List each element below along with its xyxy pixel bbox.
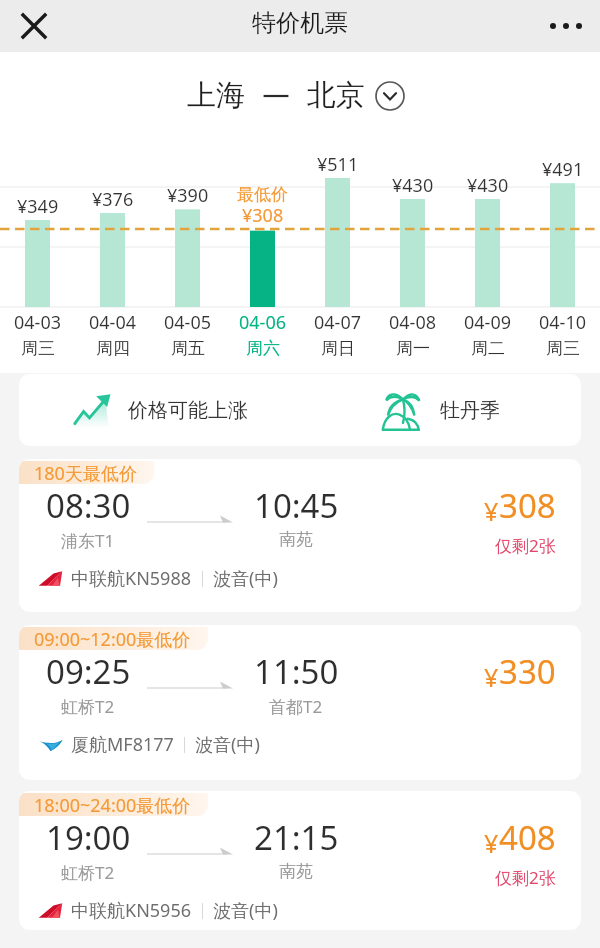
staticText: 特价机票	[252, 8, 348, 38]
staticText: ¥376	[92, 187, 134, 212]
staticText: 周三	[21, 338, 55, 359]
staticText: 波音(中)	[195, 732, 260, 757]
button[interactable]: 牡丹季	[300, 374, 581, 446]
staticText: 波音(中)	[213, 898, 278, 923]
button[interactable]: More options	[540, 0, 592, 52]
staticText: ¥	[484, 660, 499, 694]
staticText: ¥430	[467, 173, 509, 198]
staticText: 北京	[307, 77, 365, 114]
button[interactable]: 09:00~12:00最低价	[19, 625, 581, 780]
staticText: 04-05	[164, 310, 211, 335]
staticText: 408	[499, 815, 556, 860]
staticText: 最低价	[237, 184, 288, 205]
staticText: 波音(中)	[213, 566, 278, 591]
staticText: 价格可能上涨	[128, 398, 248, 423]
staticText: ¥	[484, 494, 499, 528]
staticText: ¥511	[317, 152, 359, 177]
staticText: 04-09	[464, 310, 511, 335]
staticText: 04-07	[314, 310, 361, 335]
staticText: 周三	[546, 338, 580, 359]
staticText: ¥430	[392, 173, 434, 198]
staticText: ¥491	[542, 157, 584, 182]
button[interactable]: 18:00~24:00最低价	[19, 791, 581, 930]
staticText: 330	[499, 649, 556, 694]
staticText: ¥390	[167, 183, 209, 208]
staticText: 04-04	[89, 310, 136, 335]
staticText: 南苑	[279, 861, 313, 882]
button[interactable]: 180天最低价	[19, 459, 581, 612]
staticText: 周六	[246, 338, 280, 359]
staticText: 19:00	[46, 815, 131, 860]
button[interactable]: Change date	[374, 80, 406, 112]
staticText: 周二	[471, 338, 505, 359]
staticText: 仅剩2张	[495, 534, 556, 557]
staticText: 周四	[96, 338, 130, 359]
staticText: 04-08	[389, 310, 436, 335]
staticText: 仅剩2张	[495, 866, 556, 889]
staticText: 中联航KN5956	[71, 898, 192, 923]
staticText: 04-03	[14, 310, 61, 335]
staticText: 180天最低价	[34, 461, 137, 484]
staticText: 厦航MF8177	[71, 732, 174, 757]
button[interactable]: 价格可能上涨	[19, 374, 300, 446]
staticText: ¥349	[17, 194, 59, 219]
staticText: 首都T2	[269, 695, 323, 718]
staticText: 虹桥T2	[61, 861, 115, 884]
staticText: 21:15	[254, 815, 339, 860]
staticText: ¥	[484, 826, 499, 860]
staticText: 南苑	[279, 529, 313, 550]
staticText: 10:45	[254, 483, 339, 528]
staticText: 中联航KN5988	[71, 566, 192, 591]
staticText: 09:25	[46, 649, 131, 694]
staticText: 周五	[171, 338, 205, 359]
staticText: 上海	[187, 77, 245, 114]
button[interactable]: Close	[8, 0, 60, 52]
staticText: 浦东T1	[61, 529, 115, 552]
staticText: 11:50	[254, 649, 339, 694]
staticText: 04-10	[539, 310, 586, 335]
staticText: 09:00~12:00最低价	[34, 627, 191, 650]
staticText: 周一	[396, 338, 430, 359]
staticText: 牡丹季	[440, 398, 500, 423]
staticText: 虹桥T2	[61, 695, 115, 718]
staticText: 308	[499, 483, 556, 528]
staticText: ¥308	[242, 203, 284, 228]
staticText: 18:00~24:00最低价	[34, 793, 191, 816]
staticText: 周日	[321, 338, 355, 359]
staticText: 04-06	[239, 310, 286, 335]
staticText: 08:30	[46, 483, 131, 528]
